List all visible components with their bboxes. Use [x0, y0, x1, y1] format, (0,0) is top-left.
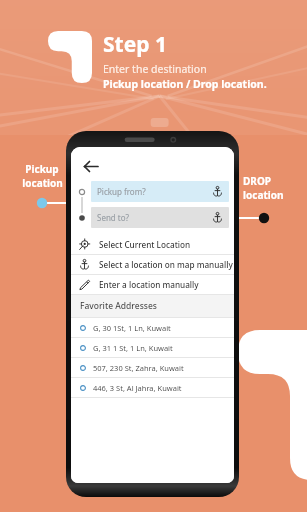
button[interactable]: 446, 3 St, Al Jahra, Kuwait	[71, 378, 234, 397]
button[interactable]: Select Current Location	[71, 235, 234, 254]
button[interactable]: G, 31 1 St, 1 Ln, Kuwait	[71, 338, 234, 357]
staticText: location	[243, 188, 284, 202]
staticText: Pickup from?	[97, 186, 146, 197]
staticText: G, 30 1St, 1 Ln, Kuwait	[93, 323, 171, 333]
button[interactable]: Send to?	[91, 207, 229, 228]
staticText: Select Current Location	[99, 239, 191, 250]
staticText: location	[22, 176, 63, 190]
button[interactable]: Enter a location manually	[71, 275, 234, 294]
button[interactable]: G, 30 1St, 1 Ln, Kuwait	[71, 318, 234, 337]
staticText: Enter the destination	[103, 62, 207, 76]
button[interactable]: 507, 230 St, Zahra, Kuwait	[71, 358, 234, 377]
staticText: Step 1	[103, 30, 167, 59]
staticText: Enter a location manually	[99, 279, 199, 290]
staticText: DROP	[243, 174, 271, 188]
staticText: Send to?	[97, 212, 130, 223]
staticText: Favorite Addresses	[80, 300, 157, 312]
staticText: Select a location on map manually	[99, 259, 233, 270]
button[interactable]: Pickup from?	[91, 181, 229, 202]
staticText: 507, 230 St, Zahra, Kuwait	[93, 363, 184, 373]
staticText: Pickup location / Drop location.	[103, 77, 267, 91]
button[interactable]: Back	[77, 153, 103, 179]
button[interactable]: Select a location on map manually	[71, 255, 234, 274]
staticText: 446, 3 St, Al Jahra, Kuwait	[93, 383, 182, 393]
staticText: Pickup	[25, 162, 59, 176]
staticText: G, 31 1 St, 1 Ln, Kuwait	[93, 343, 173, 353]
